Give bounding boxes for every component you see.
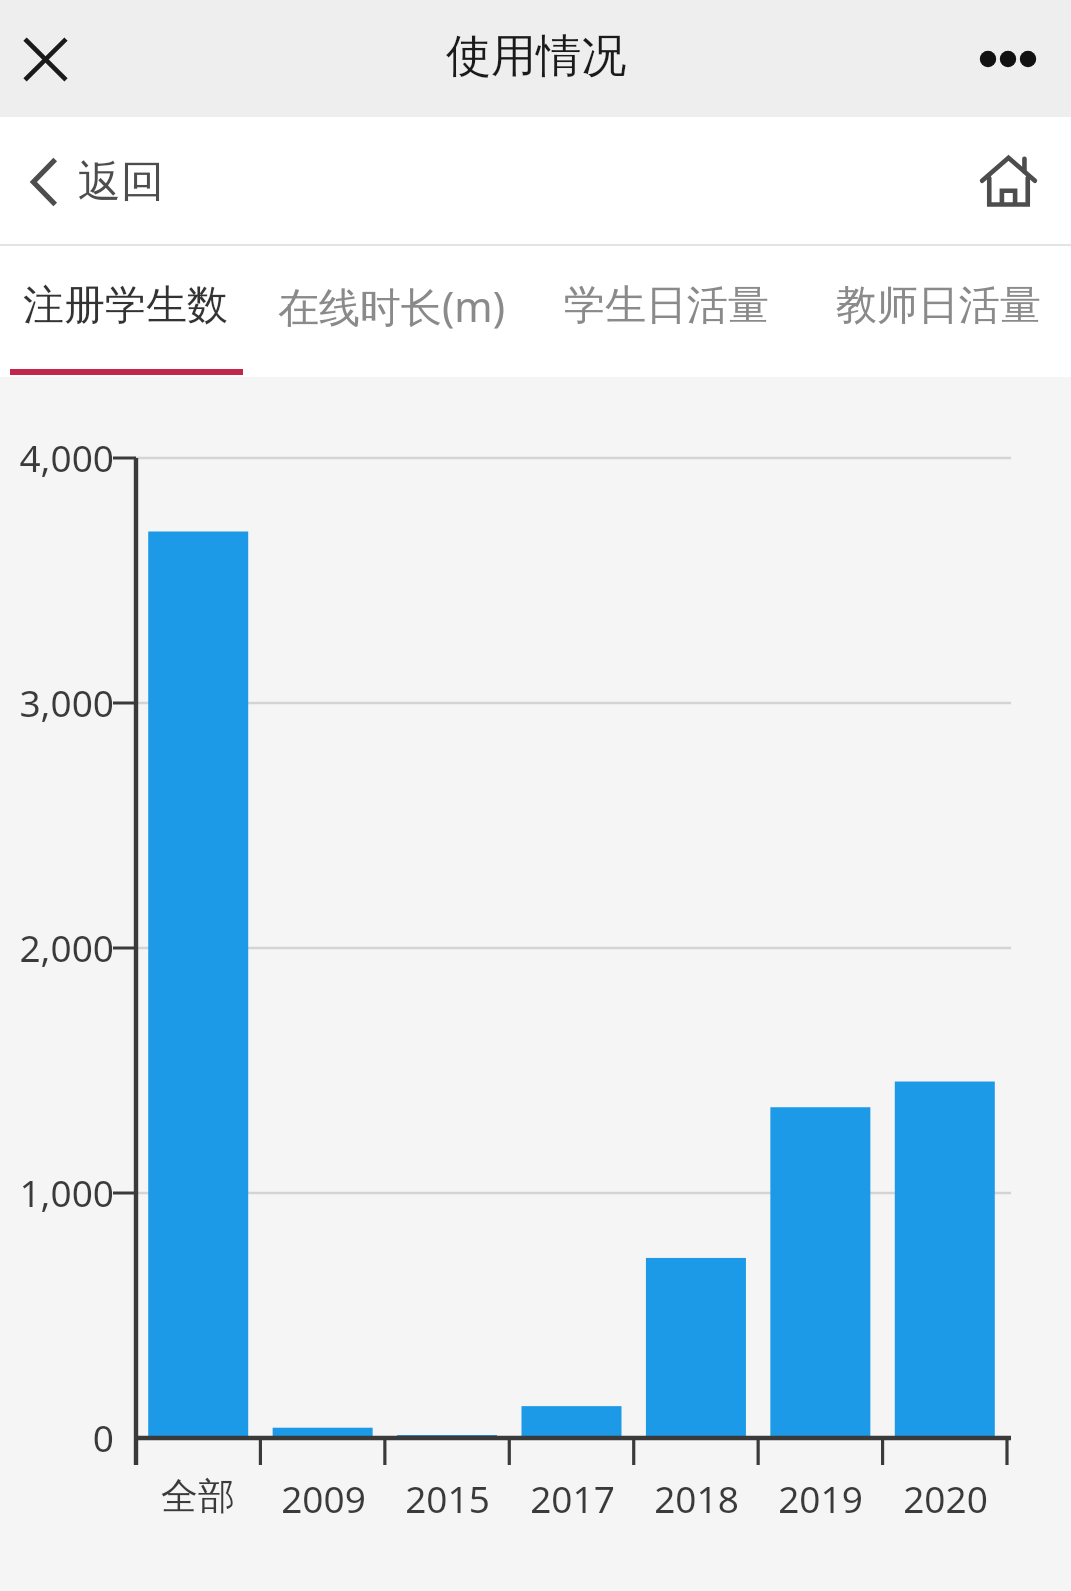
staticText: 全部 [161, 1473, 235, 1520]
staticText: 2017 [530, 1473, 615, 1523]
button[interactable]: 在线时长(m) [263, 246, 519, 366]
button[interactable]: 2009 [248, 1473, 398, 1523]
button[interactable]: Close [8, 22, 82, 96]
staticText: 2018 [654, 1473, 739, 1523]
button[interactable]: 2015 [372, 1473, 522, 1523]
staticText: 2020 [903, 1473, 988, 1523]
button[interactable]: 返回 [30, 132, 164, 232]
staticText: 学生日活量 [564, 280, 769, 332]
staticText: 使用情况 [446, 28, 626, 85]
staticText: 返回 [78, 155, 164, 209]
staticText: 2015 [405, 1473, 490, 1523]
staticText: 3,000 [19, 677, 114, 727]
staticText: 2019 [778, 1473, 863, 1523]
button[interactable]: Home [963, 137, 1053, 227]
staticText: 4,000 [19, 432, 114, 482]
button[interactable]: 2018 [621, 1473, 771, 1523]
button[interactable]: 2019 [745, 1473, 895, 1523]
button[interactable]: 学生日活量 [548, 246, 784, 366]
staticText: 2,000 [19, 922, 114, 972]
button[interactable]: More options [965, 21, 1051, 97]
button[interactable]: 2020 [870, 1473, 1020, 1523]
button[interactable]: 注册学生数 [6, 246, 244, 366]
button[interactable]: 2017 [497, 1473, 647, 1523]
button[interactable]: 全部 [123, 1473, 273, 1520]
staticText: 1,000 [19, 1167, 114, 1217]
staticText: 0 [92, 1412, 114, 1462]
staticText: 注册学生数 [23, 280, 228, 332]
staticText: 教师日活量 [836, 280, 1041, 332]
staticText: 在线时长(m) [278, 278, 505, 334]
staticText: 2009 [281, 1473, 366, 1523]
button[interactable]: 教师日活量 [821, 246, 1055, 366]
